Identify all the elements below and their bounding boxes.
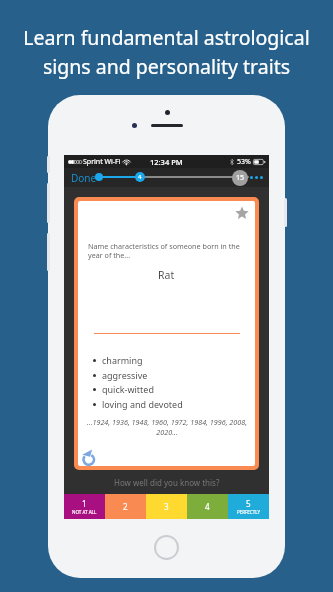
button[interactable]: Favorite [235,206,249,220]
button[interactable]: Home [154,535,179,560]
button[interactable]: 4 [187,494,228,519]
staticText: 4 [205,501,210,512]
staticText: Learn fundamental astrological signs and… [23,24,310,79]
button[interactable]: More options [249,171,264,184]
staticText: Rat [158,268,175,282]
button[interactable]: 5 [228,494,269,519]
button[interactable]: 1 [64,494,105,519]
button[interactable]: Favorite [78,201,255,466]
staticText: How well did you know this? [114,477,220,488]
button[interactable]: 2 [105,494,146,519]
button[interactable]: Done [69,168,99,187]
staticText: 3 [164,501,169,512]
staticText: Name characteristics of someone born in … [88,241,245,261]
staticText: 2 [123,501,128,512]
staticText: aggressive [102,369,148,381]
staticText: quick-witted [102,383,154,395]
staticText: 15 [236,173,245,183]
staticText: 4 [138,173,142,181]
staticText: Done [71,171,97,184]
staticText: ...1924, 1936, 1948, 1960, 1972, 1984, 1… [86,417,248,437]
staticText: PERFECTLY [237,509,260,515]
staticText: 53% [237,157,251,167]
staticText: 5 [246,498,251,509]
staticText: 12:34 PM [150,157,183,167]
staticText: loving and devoted [102,398,183,410]
button[interactable]: Card 4 of 15 [135,172,145,182]
button[interactable]: 3 [146,494,187,519]
staticText: 1 [82,498,87,509]
button[interactable]: Flip card [82,449,95,465]
staticText: NOT AT ALL [72,509,97,515]
staticText: Sprint Wi-Fi [83,157,121,167]
staticText: charming [102,354,143,366]
